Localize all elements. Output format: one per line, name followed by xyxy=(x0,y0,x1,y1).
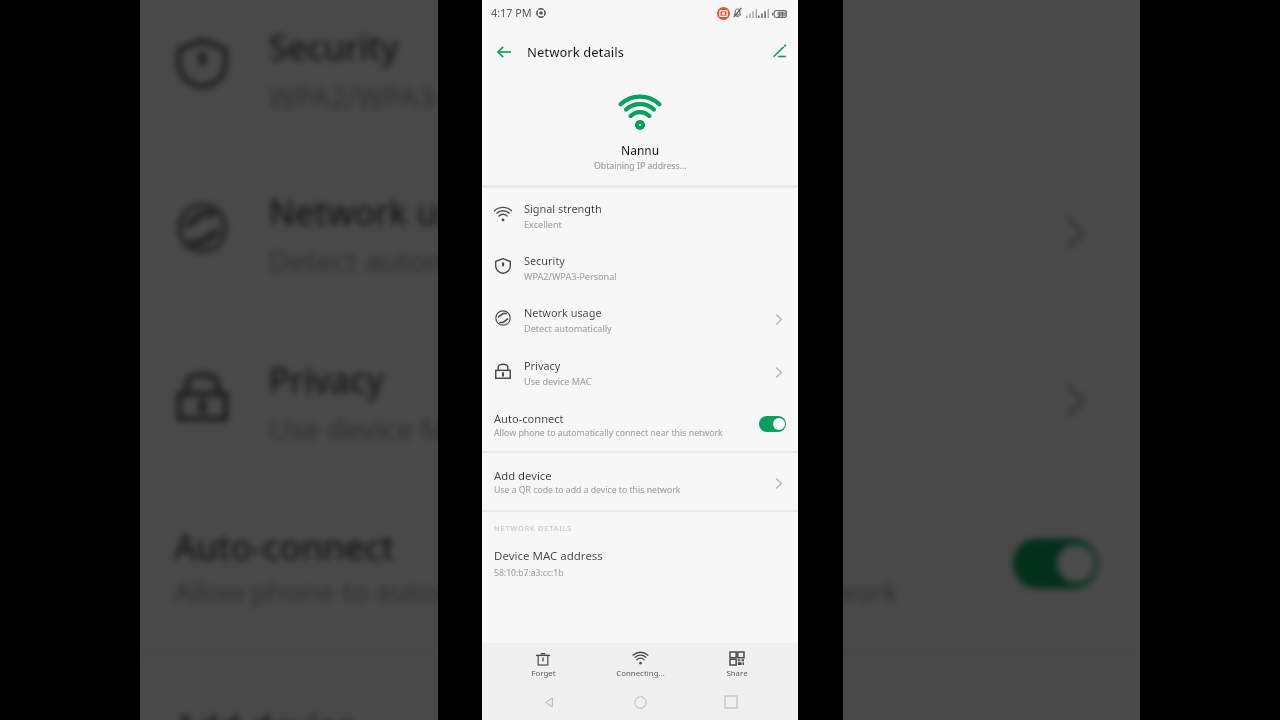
button[interactable]: Connecting... xyxy=(607,642,673,681)
button[interactable]: Privacy xyxy=(482,346,798,398)
staticText: Use device MAC xyxy=(524,375,592,387)
staticText: Device MAC address xyxy=(494,548,603,564)
button[interactable]: Share xyxy=(704,642,770,681)
staticText: Auto-connect xyxy=(174,522,395,570)
staticText: Auto-connect xyxy=(494,411,564,426)
staticText: Network usage xyxy=(269,187,516,234)
staticText: Security xyxy=(524,253,565,268)
staticText: Use a QR code to add a device to this ne… xyxy=(494,484,681,496)
staticText: Network usage xyxy=(524,305,602,320)
button[interactable]: Auto-connect xyxy=(140,481,1136,652)
staticText: Detect automatically xyxy=(524,322,612,334)
staticText: NETWORK DETAILS xyxy=(494,523,572,533)
button[interactable]: Network usage xyxy=(140,149,1136,313)
staticText: Privacy xyxy=(269,355,386,402)
staticText: Share xyxy=(726,668,748,679)
staticText: Use device MAC xyxy=(269,408,484,446)
button[interactable]: Signal strength xyxy=(482,189,798,241)
button[interactable]: Back xyxy=(490,38,518,66)
staticText: Add device xyxy=(174,703,357,720)
button[interactable]: Security xyxy=(140,0,1136,149)
button[interactable]: Edit xyxy=(768,40,790,62)
staticText: Network details xyxy=(527,43,624,60)
button[interactable]: Auto-connect xyxy=(482,398,798,452)
button[interactable]: Privacy xyxy=(140,317,1136,481)
staticText: Security xyxy=(269,22,399,70)
button[interactable]: Forget xyxy=(510,642,576,681)
staticText: Detect automatically xyxy=(269,241,547,279)
button[interactable]: Security xyxy=(482,241,798,293)
staticText: Allow phone to automatically connect nea… xyxy=(494,427,723,439)
button[interactable]: Home xyxy=(627,689,653,715)
staticText: Nannu xyxy=(621,142,660,158)
staticText: Connecting... xyxy=(616,668,665,679)
staticText: 58:10:b7:a3:cc:1b xyxy=(494,567,564,579)
staticText: Privacy xyxy=(524,358,561,373)
staticText: 51 xyxy=(777,10,785,18)
button[interactable]: Network usage xyxy=(482,293,798,345)
staticText: Signal strength xyxy=(524,201,602,216)
staticText: WPA2/WPA3-Personal xyxy=(269,76,563,114)
staticText: Obtaining IP address... xyxy=(594,160,687,172)
button[interactable]: Add device xyxy=(482,453,798,511)
staticText: 4:17 PM xyxy=(491,5,532,20)
button[interactable]: Back xyxy=(536,689,562,715)
staticText: Forget xyxy=(531,668,556,679)
staticText: Add device xyxy=(494,468,552,483)
button[interactable]: Add device xyxy=(140,655,1136,720)
staticText: WPA2/WPA3-Personal xyxy=(524,270,617,282)
staticText: Excellent xyxy=(524,218,562,230)
button[interactable]: Recent apps xyxy=(718,689,744,715)
staticText: Allow phone to automatically connect nea… xyxy=(174,573,899,611)
